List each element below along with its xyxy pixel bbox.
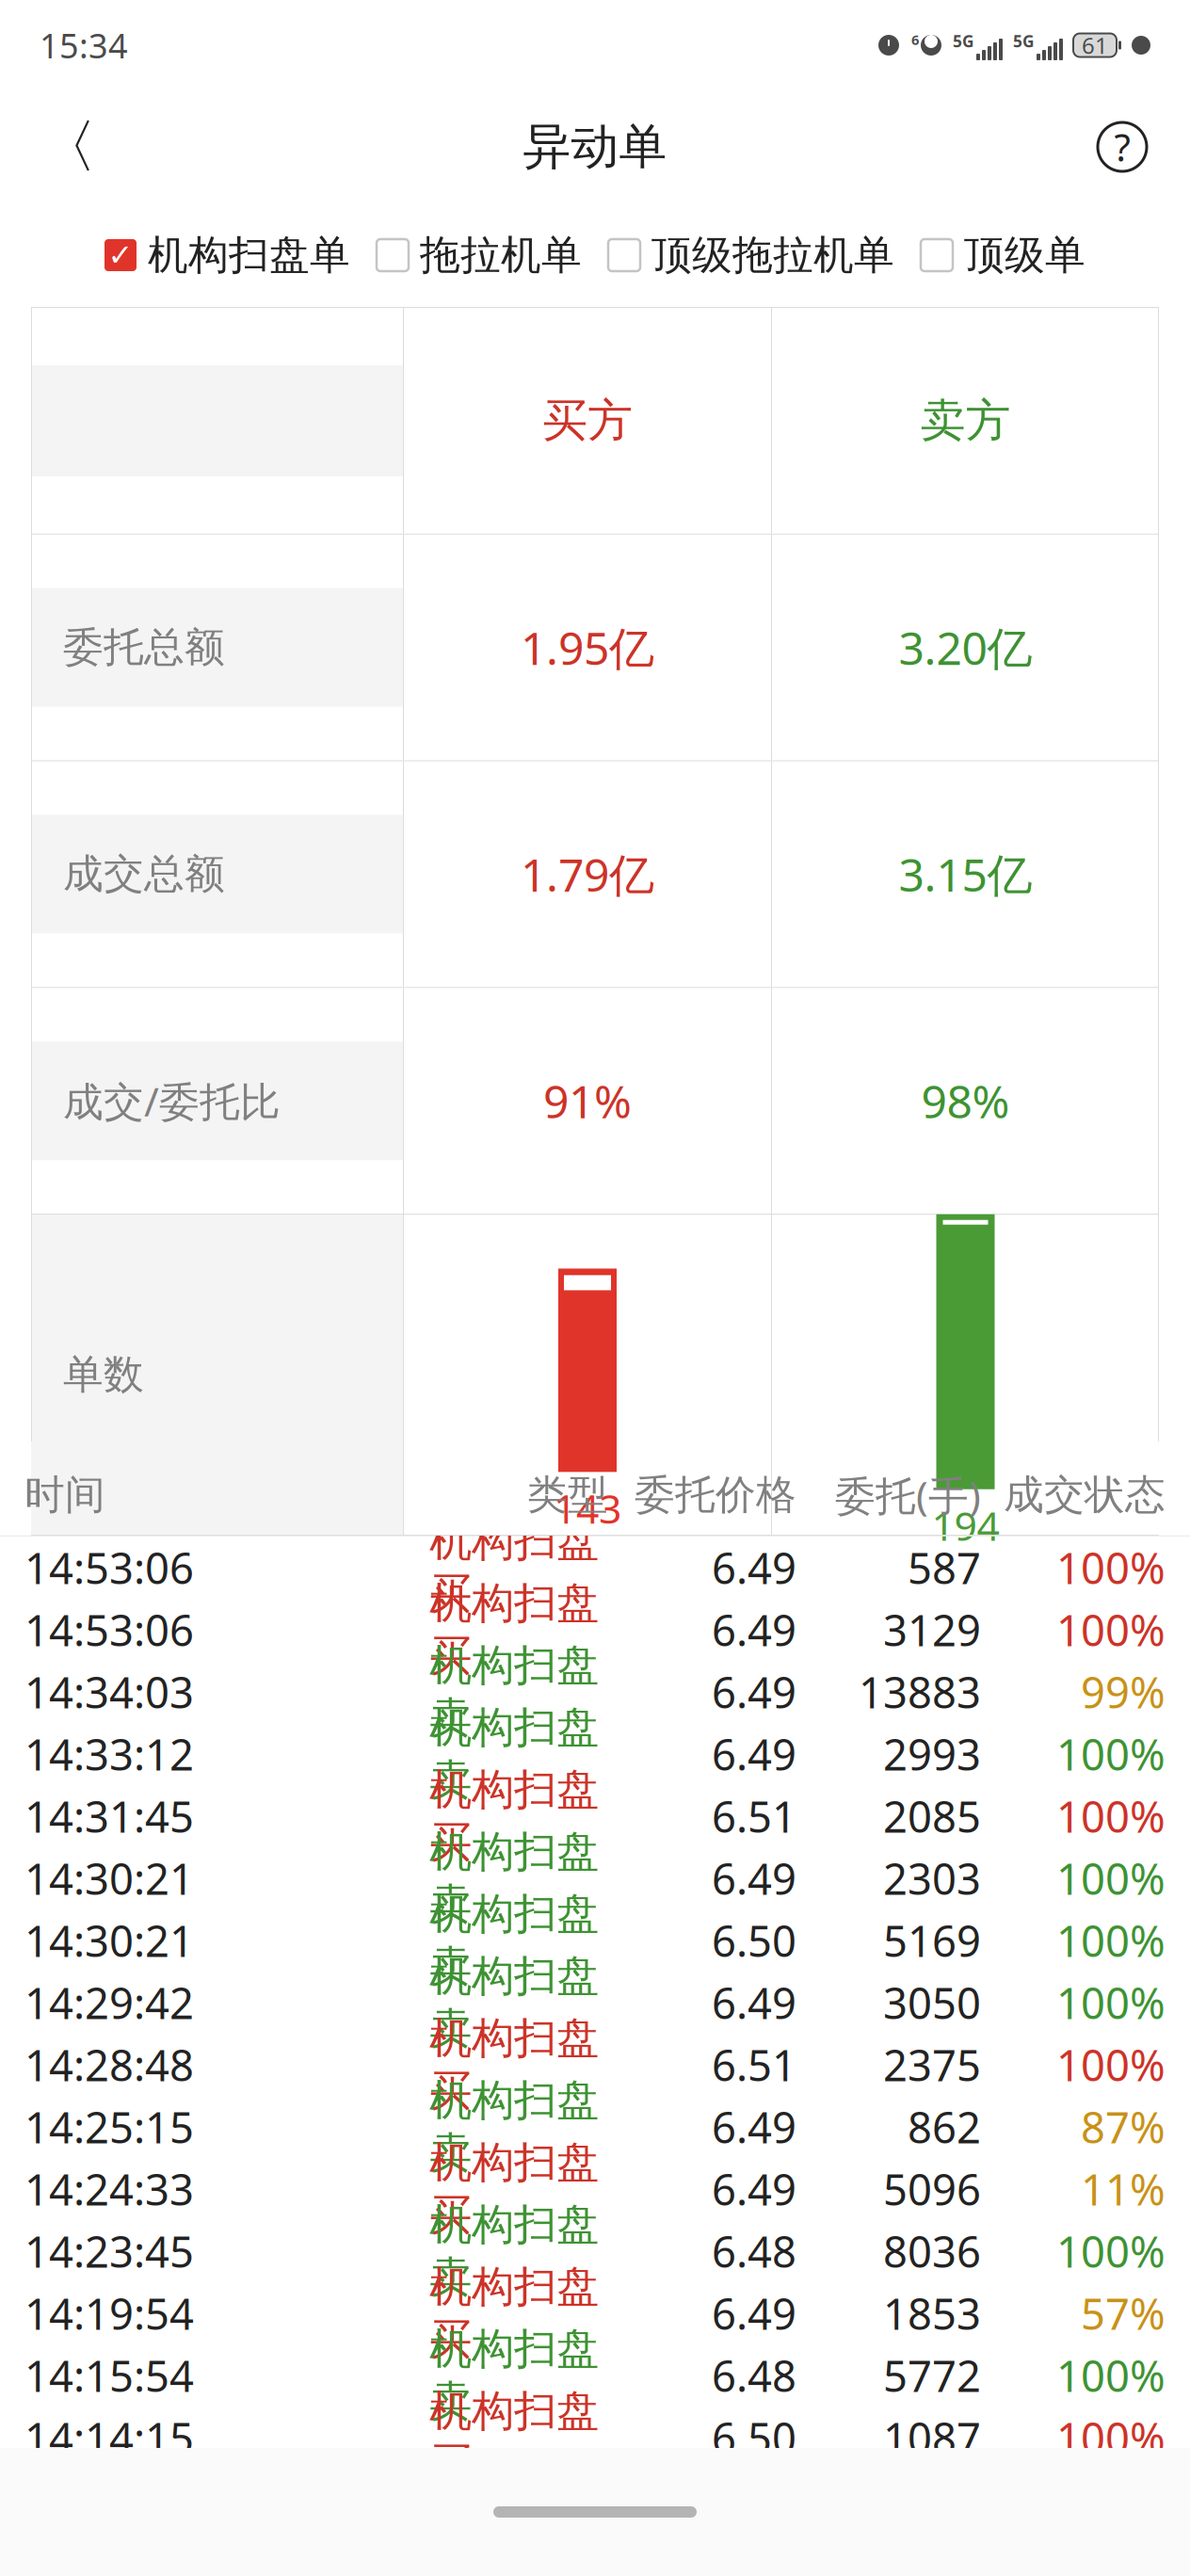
staticText: 100% xyxy=(1056,1726,1166,1782)
staticText: 委托总额 xyxy=(63,623,225,672)
staticText: 14:30:21 xyxy=(24,1912,194,1969)
staticText: 6.49 xyxy=(712,1974,796,2031)
staticText: 成交/委托比 xyxy=(63,1074,281,1127)
staticText: 100% xyxy=(1056,1912,1166,1969)
staticText: 机构扫盘买 xyxy=(429,1515,599,1620)
staticText: 99% xyxy=(1081,1663,1166,1720)
staticText: ✓ xyxy=(108,238,133,272)
staticText: 14:28:48 xyxy=(24,2036,194,2093)
staticText: 时间 xyxy=(24,1470,105,1520)
staticText: 14:25:15 xyxy=(24,2098,194,2155)
staticText: 机构扫盘买 xyxy=(429,1577,599,1682)
staticText: 87% xyxy=(1081,2098,1166,2155)
button[interactable]: 帮助 xyxy=(1077,102,1167,192)
staticText: 单数 xyxy=(63,1350,144,1399)
staticText: 14:14:15 xyxy=(24,2409,194,2466)
staticText: 14:34:03 xyxy=(24,1663,194,1720)
staticText: 6.48 xyxy=(712,2223,796,2279)
staticText: 2993 xyxy=(883,1726,981,1782)
staticText: 5096 xyxy=(883,2161,981,2217)
button[interactable]: 14:14:12 xyxy=(0,2468,1190,2531)
staticText: 13883 xyxy=(859,1663,981,1720)
button[interactable]: 拖拉机单 xyxy=(377,230,582,280)
staticText: 1087 xyxy=(883,2409,981,2466)
staticText: 14:29:42 xyxy=(24,1974,194,2031)
staticText: 100% xyxy=(1056,2409,1166,2466)
staticText: 6.51 xyxy=(712,1788,796,1844)
button[interactable]: 14:28:48 xyxy=(0,2033,1190,2096)
button[interactable]: 14:25:15 xyxy=(0,2096,1190,2158)
staticText: 6.49 xyxy=(712,1539,796,1596)
staticText: 成交总额 xyxy=(63,849,225,899)
staticText: 2375 xyxy=(883,2036,981,2093)
button[interactable]: 14:31:45 xyxy=(0,1785,1190,1847)
staticText: 〈 xyxy=(39,111,96,182)
staticText: 异动单 xyxy=(523,118,667,176)
staticText: 14:15:54 xyxy=(24,2347,194,2404)
button[interactable]: 顶级拖拉机单 xyxy=(608,230,894,280)
staticText: 5772 xyxy=(883,2347,981,2404)
button[interactable]: 14:19:54 xyxy=(0,2282,1190,2344)
button[interactable]: 14:30:21 xyxy=(0,1847,1190,1909)
staticText: 机构扫盘卖 xyxy=(429,2509,599,2576)
staticText: 8036 xyxy=(883,2223,981,2279)
staticText: 587 xyxy=(908,1539,981,1596)
staticText: 机构扫盘买 xyxy=(429,2385,599,2490)
staticText: 机构扫盘买 xyxy=(429,2261,599,2366)
staticText: 顶级拖拉机单 xyxy=(651,230,894,280)
button[interactable]: 14:15:54 xyxy=(0,2344,1190,2406)
button[interactable]: 14:23:45 xyxy=(0,2220,1190,2282)
staticText: 委托价格 xyxy=(635,1470,796,1520)
staticText: 3.20亿 xyxy=(899,617,1032,677)
staticText: 拖拉机单 xyxy=(420,230,582,280)
staticText: 100% xyxy=(1056,1974,1166,2031)
staticText: 类型 xyxy=(527,1470,608,1520)
staticText: 机构扫盘卖 xyxy=(429,1701,599,1806)
staticText: 14:53:06 xyxy=(24,1601,194,1658)
staticText: 6.49 xyxy=(712,1726,796,1782)
staticText: 98% xyxy=(921,1071,1010,1131)
button[interactable]: 14:29:42 xyxy=(0,1971,1190,2033)
staticText: 5G xyxy=(1013,30,1035,52)
staticText: 3129 xyxy=(883,1601,981,1658)
staticText: 100% xyxy=(1056,1850,1166,1906)
staticText: 57% xyxy=(1081,2285,1166,2341)
staticText: 11% xyxy=(1081,2161,1166,2217)
staticText: 100% xyxy=(1056,1601,1166,1658)
button[interactable]: 14:24:33 xyxy=(0,2158,1190,2220)
button[interactable]: 返回 xyxy=(23,102,113,192)
staticText: 委托(手) xyxy=(835,1468,981,1522)
button[interactable]: 14:34:03 xyxy=(0,1661,1190,1723)
button[interactable]: 14:14:15 xyxy=(0,2406,1190,2468)
staticText: 6.49 xyxy=(712,2285,796,2341)
staticText: 6.49 xyxy=(712,2098,796,2155)
staticText: 顶级单 xyxy=(964,230,1085,280)
staticText: 14:23:45 xyxy=(24,2223,194,2279)
staticText: 100% xyxy=(1056,2223,1166,2279)
button[interactable]: 顶级单 xyxy=(921,230,1085,280)
staticText: 100% xyxy=(1056,1539,1166,1596)
staticText: 862 xyxy=(908,2098,981,2155)
button[interactable]: 14:30:21 xyxy=(0,1909,1190,1971)
staticText: 机构扫盘卖 xyxy=(429,2074,599,2179)
staticText: 15:34 xyxy=(40,23,128,68)
button[interactable]: 14:53:06 xyxy=(0,1536,1190,1599)
button[interactable]: ✓ xyxy=(105,230,350,280)
button[interactable]: 14:33:12 xyxy=(0,1723,1190,1785)
staticText: 100% xyxy=(1056,2347,1166,2404)
staticText: 机构扫盘卖 xyxy=(429,1888,599,1993)
staticText: 6.49 xyxy=(712,1601,796,1658)
staticText: 100% xyxy=(1056,1788,1166,1844)
staticText: 61 xyxy=(1082,30,1108,60)
button[interactable]: 14:53:06 xyxy=(0,1599,1190,1661)
staticText: 机构扫盘卖 xyxy=(429,2199,599,2303)
staticText: 6.50 xyxy=(712,2409,796,2466)
